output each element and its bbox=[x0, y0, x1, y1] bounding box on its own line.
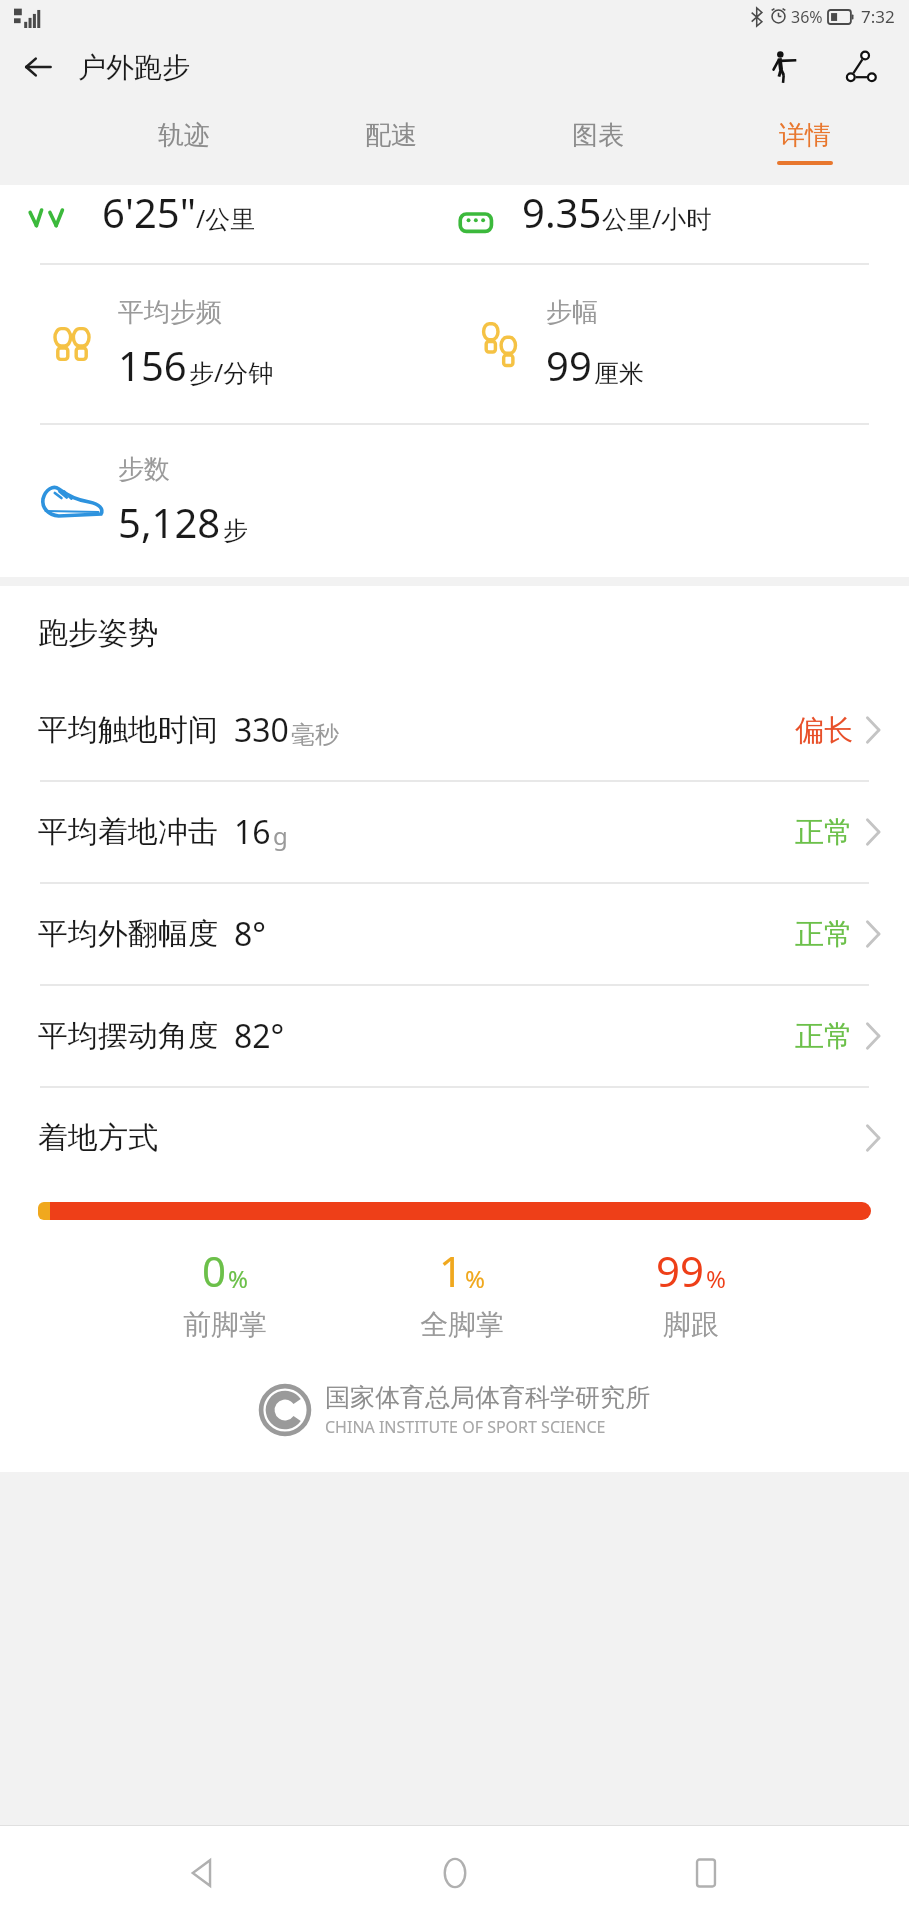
staticText: 36% bbox=[791, 6, 823, 28]
staticText: 8° bbox=[234, 912, 267, 956]
button[interactable]: 着地方式 bbox=[0, 1088, 909, 1188]
staticText: 平均触地时间 bbox=[38, 711, 218, 749]
staticText: 330 bbox=[234, 708, 289, 752]
staticText: 0 bbox=[202, 1242, 227, 1299]
staticText: 公里/小时 bbox=[602, 201, 712, 235]
staticText: 全脚掌 bbox=[420, 1307, 504, 1342]
button[interactable]: Back bbox=[155, 1826, 251, 1920]
staticText: 着地方式 bbox=[38, 1119, 158, 1157]
staticText: 82° bbox=[234, 1014, 285, 1058]
staticText: 7:32 bbox=[861, 5, 895, 28]
staticText: 步数 bbox=[118, 453, 170, 486]
button[interactable]: Recents bbox=[658, 1826, 754, 1920]
button[interactable]: 详情 bbox=[771, 111, 839, 173]
staticText: 平均步频 bbox=[118, 296, 222, 329]
staticText: 国家体育总局体育科学研究所 bbox=[325, 1382, 650, 1413]
staticText: 毫秒 bbox=[291, 720, 339, 750]
staticText: 5,128 bbox=[118, 495, 221, 549]
staticText: 6'25" bbox=[102, 185, 196, 237]
staticText: % bbox=[228, 1262, 248, 1295]
staticText: 1 bbox=[439, 1242, 464, 1299]
button[interactable]: Back bbox=[10, 39, 66, 95]
staticText: 前脚掌 bbox=[183, 1307, 267, 1342]
staticText: 平均着地冲击 bbox=[38, 813, 218, 851]
staticText: 平均外翻幅度 bbox=[38, 915, 218, 953]
staticText: 跑步姿势 bbox=[38, 614, 158, 652]
button[interactable]: 轨迹 bbox=[150, 111, 218, 173]
staticText: 99 bbox=[546, 338, 592, 392]
button[interactable]: 平均触地时间 bbox=[0, 680, 909, 780]
staticText: % bbox=[706, 1262, 726, 1295]
staticText: 正常 bbox=[795, 916, 853, 953]
staticText: 正常 bbox=[795, 814, 853, 851]
staticText: 脚跟 bbox=[663, 1307, 719, 1342]
staticText: 步/分钟 bbox=[189, 355, 274, 389]
button[interactable]: Share bbox=[833, 39, 889, 95]
staticText: % bbox=[465, 1262, 485, 1295]
button[interactable]: 平均着地冲击 bbox=[0, 782, 909, 882]
button[interactable]: Home bbox=[407, 1826, 503, 1920]
button[interactable]: 图表 bbox=[564, 111, 632, 173]
staticText: 正常 bbox=[795, 1018, 853, 1055]
staticText: g bbox=[273, 819, 288, 852]
staticText: CHINA INSTITUTE OF SPORT SCIENCE bbox=[325, 1416, 606, 1438]
staticText: 99 bbox=[656, 1242, 705, 1299]
staticText: 平均摆动角度 bbox=[38, 1017, 218, 1055]
button[interactable]: 平均外翻幅度 bbox=[0, 884, 909, 984]
staticText: 偏长 bbox=[795, 712, 853, 749]
staticText: 户外跑步 bbox=[78, 50, 190, 85]
staticText: 图表 bbox=[572, 119, 624, 152]
staticText: 16 bbox=[234, 810, 271, 854]
staticText: 厘米 bbox=[594, 358, 644, 389]
button[interactable]: Running posture bbox=[753, 39, 809, 95]
staticText: 步幅 bbox=[546, 296, 598, 329]
staticText: 9.35 bbox=[522, 185, 602, 237]
staticText: 配速 bbox=[365, 119, 417, 152]
staticText: 步 bbox=[223, 515, 248, 546]
staticText: /公里 bbox=[196, 201, 256, 235]
staticText: 轨迹 bbox=[158, 119, 210, 152]
staticText: 详情 bbox=[779, 119, 831, 152]
button[interactable]: 平均摆动角度 bbox=[0, 986, 909, 1086]
button[interactable]: 配速 bbox=[357, 111, 425, 173]
staticText: 156 bbox=[118, 338, 187, 392]
